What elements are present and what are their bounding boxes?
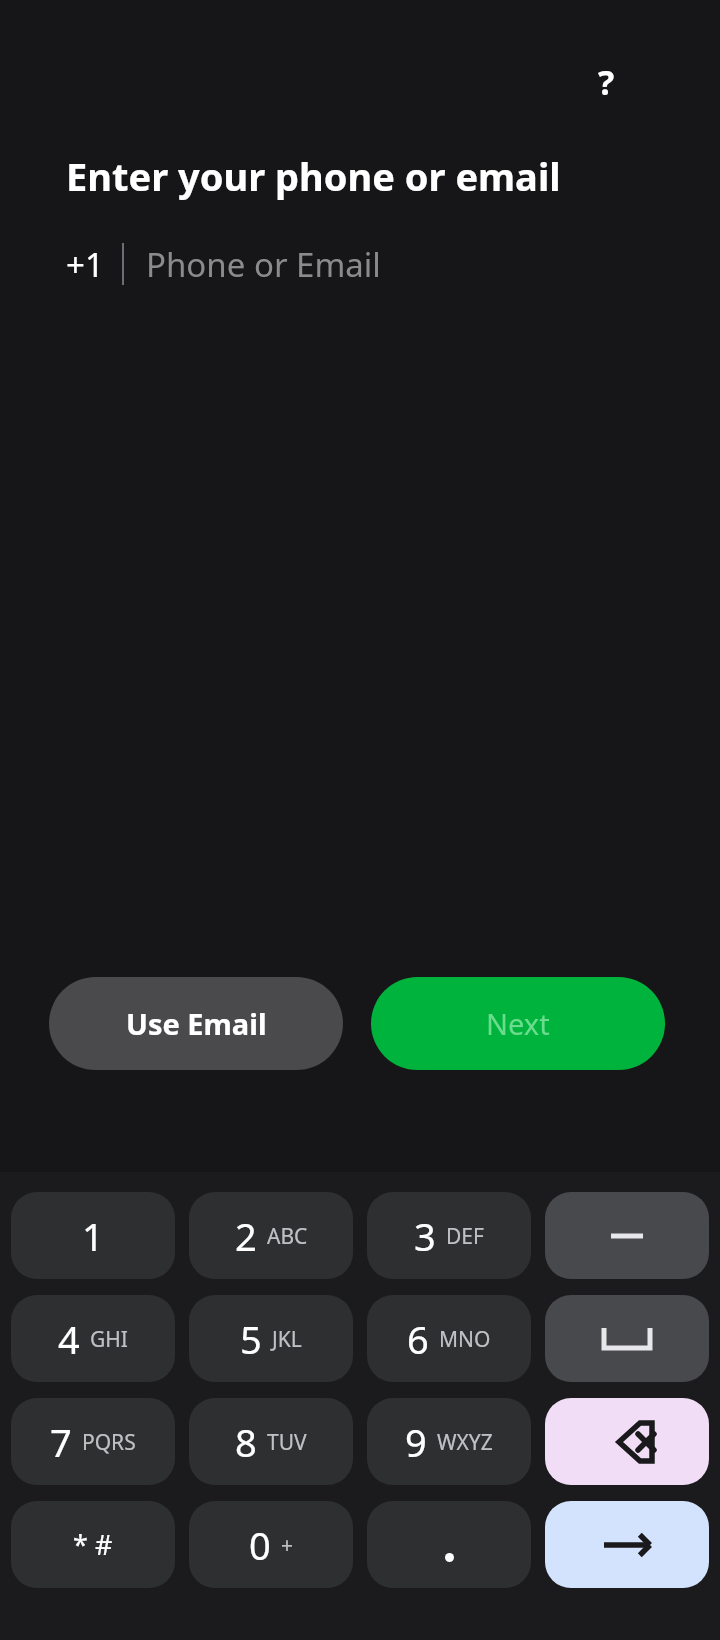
- staticText: DEF: [446, 1222, 484, 1251]
- staticText: 9: [405, 1416, 427, 1468]
- button[interactable]: 3: [367, 1192, 531, 1279]
- button[interactable]: Enter: [545, 1501, 709, 1588]
- staticText: 0: [249, 1519, 271, 1571]
- staticText: Phone or Email: [146, 242, 381, 287]
- button[interactable]: Use Email: [49, 977, 343, 1070]
- button[interactable]: Backspace: [545, 1398, 709, 1485]
- staticText: MNO: [439, 1325, 491, 1354]
- staticText: 1: [82, 1210, 104, 1262]
- staticText: * #: [73, 1526, 113, 1563]
- button[interactable]: 0: [189, 1501, 353, 1588]
- staticText: Next: [486, 1004, 550, 1043]
- staticText: ABC: [267, 1222, 308, 1251]
- staticText: 5: [240, 1313, 262, 1365]
- staticText: Enter your phone or email: [66, 150, 561, 202]
- staticText: Use Email: [126, 1004, 267, 1043]
- staticText: WXYZ: [437, 1428, 493, 1457]
- button[interactable]: 7: [11, 1398, 175, 1485]
- button[interactable]: 9: [367, 1398, 531, 1485]
- button[interactable]: 6: [367, 1295, 531, 1382]
- staticText: 4: [58, 1313, 80, 1365]
- button[interactable]: +1: [66, 232, 680, 296]
- button[interactable]: 8: [189, 1398, 353, 1485]
- staticText: 8: [235, 1416, 257, 1468]
- staticText: 3: [414, 1210, 436, 1262]
- button[interactable]: 1: [11, 1192, 175, 1279]
- staticText: 6: [407, 1313, 429, 1365]
- staticText: ?: [598, 59, 615, 105]
- button[interactable]: 4: [11, 1295, 175, 1382]
- staticText: 2: [235, 1210, 257, 1262]
- button[interactable]: Space: [545, 1295, 709, 1382]
- button[interactable]: 2: [189, 1192, 353, 1279]
- staticText: TUV: [267, 1428, 307, 1457]
- button[interactable]: Help: [582, 58, 630, 106]
- staticText: GHI: [90, 1325, 128, 1354]
- button[interactable]: Dash: [545, 1192, 709, 1279]
- button[interactable]: 5: [189, 1295, 353, 1382]
- staticText: PQRS: [82, 1428, 136, 1457]
- button[interactable]: * #: [11, 1501, 175, 1588]
- button[interactable]: Next: [371, 977, 665, 1070]
- staticText: 7: [50, 1416, 72, 1468]
- staticText: JKL: [272, 1325, 302, 1354]
- staticText: +1: [66, 242, 104, 287]
- button[interactable]: Period: [367, 1501, 531, 1588]
- staticText: +: [281, 1531, 294, 1560]
